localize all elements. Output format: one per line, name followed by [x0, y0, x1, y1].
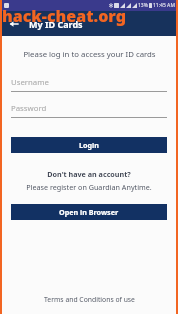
- button[interactable]: Open in Browser: [11, 204, 167, 220]
- button[interactable]: Terms and Conditions of use: [0, 295, 178, 314]
- staticText: Open in Browser: [59, 207, 119, 217]
- staticText: Login: [79, 140, 99, 150]
- staticText: 11:45 AM: [153, 2, 175, 9]
- staticText: 13%: [138, 2, 148, 9]
- staticText: Password: [11, 103, 47, 114]
- staticText: Username: [11, 77, 49, 88]
- staticText: Please log in to access your ID cards: [23, 49, 156, 60]
- button[interactable]: Username: [11, 77, 167, 92]
- staticText: hack-cheat.org: [2, 5, 126, 27]
- staticText: Please register on Guardian Anytime.: [26, 182, 152, 192]
- staticText: My ID Cards: [29, 18, 83, 30]
- staticText: Terms and Conditions of use: [44, 295, 135, 304]
- button[interactable]: Back: [4, 14, 24, 34]
- button[interactable]: Password: [11, 103, 167, 118]
- staticText: Don't have an account?: [47, 169, 131, 179]
- button[interactable]: Login: [11, 137, 167, 153]
